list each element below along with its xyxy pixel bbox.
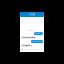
- staticText: See you soon: [32, 41, 42, 42]
- staticText: Sounds good to me: [22, 37, 35, 38]
- staticText: Hey there: [35, 33, 42, 34]
- staticText: Great, thanks!: [22, 45, 31, 46]
- staticText: Today 9:41: [28, 29, 36, 31]
- staticText: Chat: [29, 13, 35, 16]
